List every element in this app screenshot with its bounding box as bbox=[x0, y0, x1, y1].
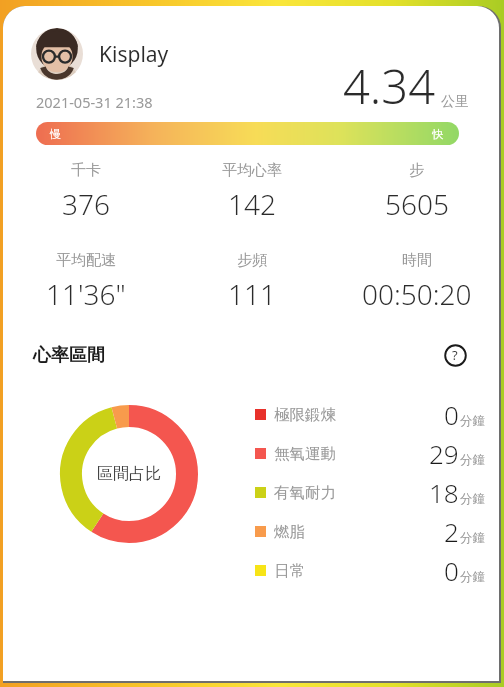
staticText: 142 bbox=[228, 185, 276, 223]
button[interactable]: 時間 bbox=[334, 251, 499, 313]
button[interactable]: 無氧運動 bbox=[255, 434, 485, 473]
button[interactable]: Kisplay bbox=[31, 28, 169, 80]
staticText: 有氧耐力 bbox=[274, 483, 336, 503]
staticText: 4.34 bbox=[343, 54, 435, 118]
staticText: 分鐘 bbox=[460, 452, 485, 468]
button[interactable]: 平均心率 bbox=[169, 161, 334, 223]
staticText: 千卡 bbox=[71, 161, 101, 180]
staticText: 區間占比 bbox=[97, 464, 161, 484]
button[interactable]: 區間占比 bbox=[60, 405, 198, 543]
staticText: 燃脂 bbox=[274, 522, 305, 542]
staticText: 分鐘 bbox=[460, 413, 485, 429]
staticText: 分鐘 bbox=[460, 530, 485, 546]
button[interactable]: 燃脂 bbox=[255, 512, 485, 551]
staticText: ? bbox=[452, 346, 458, 364]
button[interactable]: 步 bbox=[334, 161, 499, 223]
staticText: 5605 bbox=[385, 185, 449, 223]
button[interactable]: 極限鍛煉 bbox=[255, 395, 485, 434]
staticText: 18 bbox=[429, 475, 459, 510]
staticText: 心率區間 bbox=[33, 344, 105, 367]
staticText: 00:50:20 bbox=[362, 275, 472, 313]
button[interactable]: 日常 bbox=[255, 551, 485, 590]
staticText: 111 bbox=[228, 275, 276, 313]
staticText: 步頻 bbox=[237, 251, 267, 270]
staticText: 平均心率 bbox=[222, 161, 282, 180]
staticText: 平均配速 bbox=[56, 251, 116, 270]
button[interactable]: 平均配速 bbox=[3, 251, 169, 313]
staticText: 快 bbox=[432, 127, 443, 141]
staticText: 29 bbox=[429, 436, 459, 471]
button[interactable]: 步頻 bbox=[169, 251, 334, 313]
staticText: 0 bbox=[444, 553, 459, 588]
button[interactable]: 慢 bbox=[36, 122, 459, 145]
staticText: 公里 bbox=[441, 93, 469, 111]
staticText: 步 bbox=[409, 161, 424, 180]
staticText: 日常 bbox=[274, 561, 305, 581]
staticText: 極限鍛煉 bbox=[274, 405, 336, 425]
staticText: 0 bbox=[444, 397, 459, 432]
staticText: 2 bbox=[444, 514, 459, 549]
button[interactable]: 千卡 bbox=[3, 161, 169, 223]
staticText: Kisplay bbox=[99, 40, 169, 69]
staticText: 2021-05-31 21:38 bbox=[36, 92, 153, 112]
staticText: 376 bbox=[62, 185, 110, 223]
staticText: 分鐘 bbox=[460, 569, 485, 585]
button[interactable]: 有氧耐力 bbox=[255, 473, 485, 512]
staticText: 時間 bbox=[402, 251, 432, 270]
staticText: 慢 bbox=[50, 127, 61, 141]
staticText: 分鐘 bbox=[460, 491, 485, 507]
staticText: 11'36" bbox=[46, 275, 126, 313]
staticText: 無氧運動 bbox=[274, 444, 336, 464]
button[interactable]: Help about heart rate zones bbox=[439, 339, 471, 371]
